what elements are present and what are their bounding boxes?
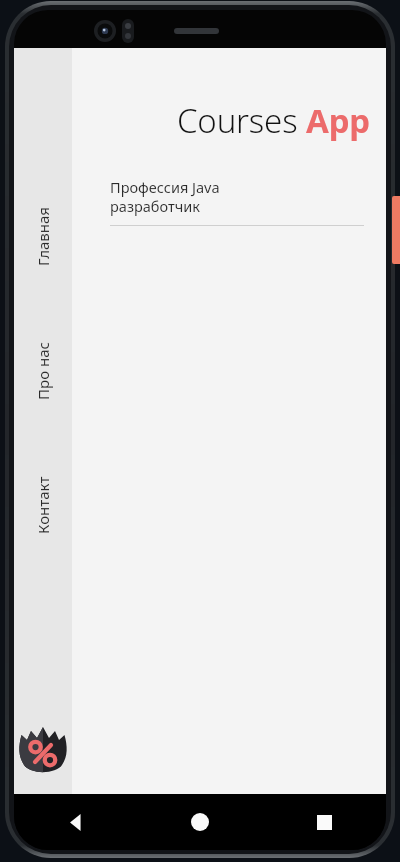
- other: Side button: [392, 196, 400, 264]
- button[interactable]: App logo, discounts: [17, 724, 69, 776]
- staticText: Courses: [177, 98, 306, 143]
- button[interactable]: Контакты: [14, 466, 72, 544]
- staticText: Контакты: [33, 476, 53, 534]
- staticText: App: [306, 98, 370, 143]
- button[interactable]: Recent apps: [262, 794, 386, 850]
- button[interactable]: Home: [138, 794, 262, 850]
- staticText: Профессия Java разработчик: [110, 177, 220, 216]
- button[interactable]: Про нас: [14, 332, 72, 410]
- button[interactable]: Профессия Java разработчик: [72, 177, 386, 226]
- staticText: Про нас: [33, 342, 53, 400]
- button[interactable]: Главная: [14, 198, 72, 276]
- button[interactable]: Back: [14, 794, 138, 850]
- staticText: Главная: [33, 208, 53, 266]
